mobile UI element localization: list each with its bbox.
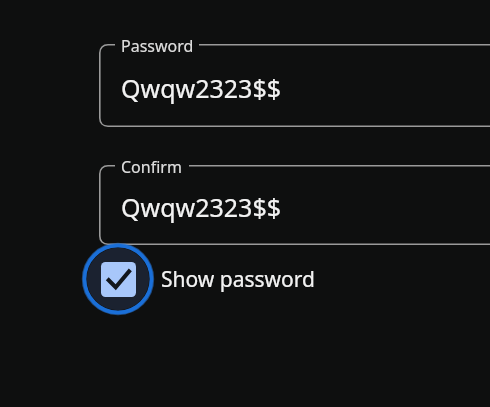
other: Show password checkbox xyxy=(82,243,154,315)
staticText: Show password xyxy=(161,265,315,294)
staticText: Qwqw2323$$ xyxy=(121,190,282,224)
button[interactable]: Confirm xyxy=(99,165,490,245)
button[interactable]: Show password checkbox xyxy=(82,243,337,315)
staticText: Confirm xyxy=(121,156,182,178)
staticText: Qwqw2323$$ xyxy=(121,71,282,105)
staticText: Password xyxy=(121,35,194,57)
button[interactable]: Password xyxy=(99,44,490,127)
